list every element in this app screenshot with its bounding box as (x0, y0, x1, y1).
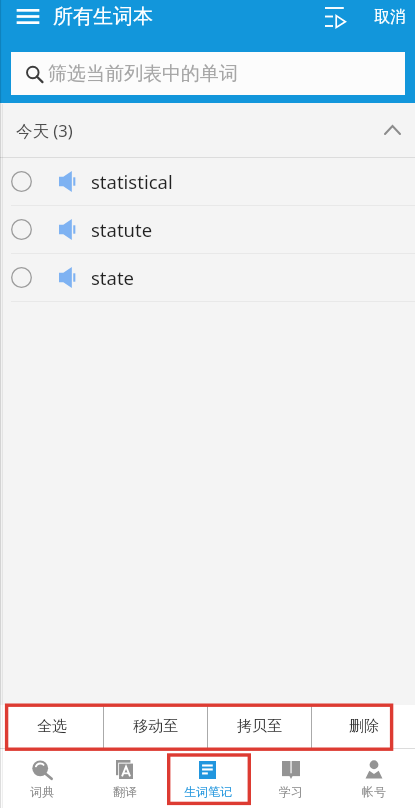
button[interactable]: 学习 (249, 749, 332, 808)
staticText: 生词笔记 (184, 784, 232, 799)
staticText: 取消 (374, 7, 406, 27)
button[interactable]: state (0, 254, 415, 301)
button[interactable]: 帐号 (332, 749, 415, 808)
button[interactable]: 翻译 (83, 749, 166, 808)
button[interactable]: 全选 (0, 705, 103, 748)
button[interactable]: 删除 (312, 705, 415, 748)
button[interactable]: 移动至 (104, 705, 207, 748)
staticText: 移动至 (133, 717, 178, 736)
staticText: statute (91, 217, 153, 242)
staticText: 词典 (30, 784, 54, 799)
staticText: 全选 (37, 717, 67, 736)
button[interactable]: statute (0, 206, 415, 253)
staticText: 所有生词本 (53, 4, 153, 29)
button[interactable]: statistical (0, 158, 415, 205)
button[interactable]: 生词笔记 (166, 749, 249, 808)
button[interactable]: 取消 (365, 0, 415, 33)
staticText: state (91, 265, 135, 290)
staticText: 翻译 (113, 784, 137, 799)
staticText: 今天 (3) (16, 119, 73, 142)
staticText: 筛选当前列表中的单词 (48, 62, 238, 86)
staticText: 帐号 (362, 784, 386, 799)
button[interactable]: 拷贝至 (208, 705, 311, 748)
staticText: 删除 (349, 717, 379, 736)
staticText: statistical (91, 169, 173, 194)
button[interactable]: 词典 (0, 749, 83, 808)
button[interactable]: Menu (0, 0, 53, 33)
button[interactable]: 今天 (3) (0, 103, 415, 157)
staticText: 学习 (279, 784, 303, 799)
button[interactable]: Play all (304, 0, 365, 33)
button[interactable]: 筛选当前列表中的单词 (11, 52, 405, 95)
staticText: 拷贝至 (237, 717, 282, 736)
